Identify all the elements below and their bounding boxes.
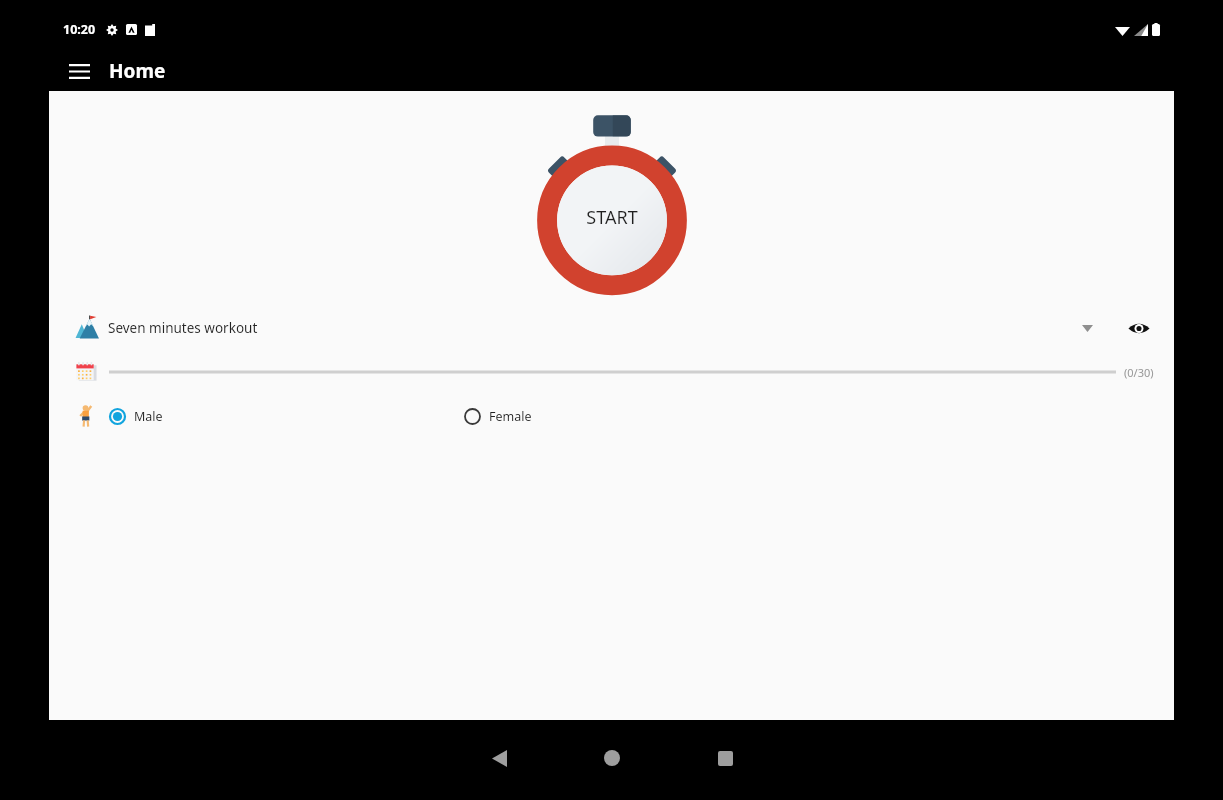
button[interactable]: Home: [584, 730, 640, 786]
button[interactable]: Female: [464, 394, 819, 438]
button[interactable]: Recent apps: [697, 730, 753, 786]
staticText: START: [586, 205, 638, 230]
button[interactable]: Open navigation drawer: [61, 53, 97, 89]
staticText: Female: [489, 408, 532, 425]
button[interactable]: Seven minutes workout: [108, 306, 1119, 350]
button[interactable]: Workout count slider: [109, 350, 1116, 394]
staticText: (0/30): [1124, 365, 1154, 380]
staticText: Male: [134, 408, 163, 425]
button[interactable]: Male: [109, 394, 464, 438]
staticText: Home: [109, 58, 166, 84]
button[interactable]: Start workout: [532, 113, 692, 303]
button[interactable]: Back: [471, 730, 527, 786]
button[interactable]: Preview workout: [1119, 308, 1159, 348]
staticText: Seven minutes workout: [108, 319, 258, 337]
staticText: 10:20: [63, 21, 96, 38]
